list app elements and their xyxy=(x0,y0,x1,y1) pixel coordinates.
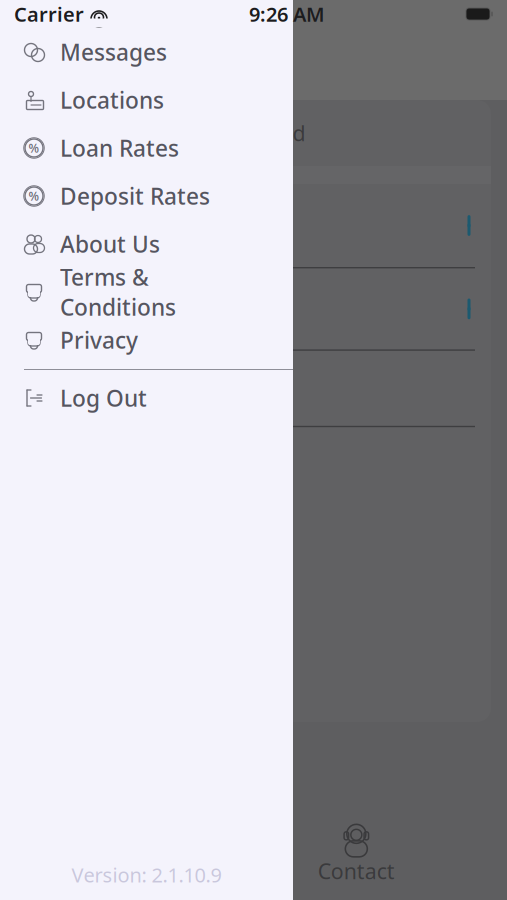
staticText: Log Out xyxy=(60,383,147,413)
button[interactable]: % xyxy=(0,172,293,220)
staticText: Scheduled xyxy=(201,119,305,147)
staticText: Version: 2.1.10.9 xyxy=(71,861,221,888)
button[interactable]: Bill Pay xyxy=(96,818,206,892)
button[interactable]: Locations xyxy=(0,76,293,124)
button[interactable]: Terms & Conditions xyxy=(0,268,293,316)
staticText: Terms & Conditions xyxy=(60,262,176,322)
staticText: Loan Rates xyxy=(60,133,179,163)
staticText: Deposit Rates xyxy=(60,181,210,211)
staticText: 9:26 AM xyxy=(249,1,325,27)
staticText: % xyxy=(28,188,39,204)
staticText: Carrier xyxy=(14,1,84,27)
staticText: Locations xyxy=(60,85,164,115)
button[interactable]: Privacy xyxy=(0,316,293,364)
staticText: Contact xyxy=(318,857,395,885)
button[interactable]: Log Out xyxy=(0,374,293,422)
button[interactable]: Messages xyxy=(0,28,293,76)
button[interactable]: About Us xyxy=(0,220,293,268)
staticText: % xyxy=(28,140,39,156)
staticText: Bill Pay xyxy=(114,857,188,885)
button[interactable]: % xyxy=(0,124,293,172)
staticText: Privacy xyxy=(60,325,138,355)
staticText: Messages xyxy=(60,37,167,67)
button[interactable]: Contact xyxy=(301,818,411,892)
staticText: About Us xyxy=(60,229,160,259)
